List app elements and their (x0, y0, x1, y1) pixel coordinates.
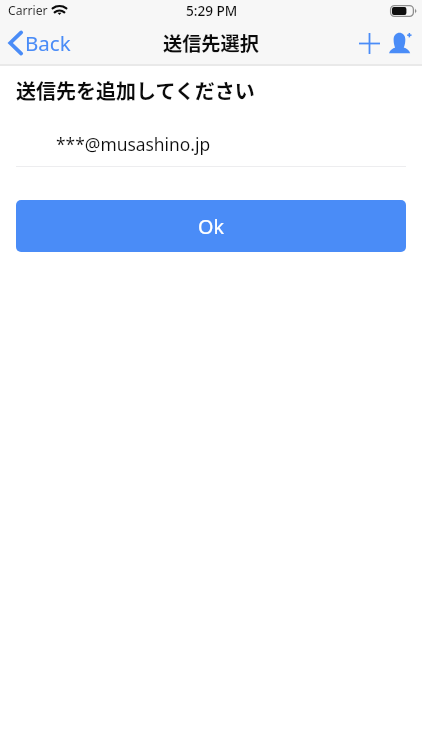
staticText: 送信先選択 (163, 29, 259, 57)
staticText: 5:29 PM (186, 1, 238, 20)
button[interactable]: Ok (16, 200, 406, 252)
staticText: Back (25, 29, 71, 57)
button[interactable]: Back (8, 29, 71, 57)
staticText: Carrier (8, 2, 48, 19)
button[interactable]: Add (354, 28, 384, 58)
staticText: Ok (198, 213, 225, 240)
button[interactable]: Add contact (385, 26, 415, 58)
staticText: 送信先を追加してください (16, 76, 255, 105)
staticText: ***@musashino.jp (56, 132, 211, 156)
button[interactable]: ***@musashino.jp (16, 112, 406, 167)
